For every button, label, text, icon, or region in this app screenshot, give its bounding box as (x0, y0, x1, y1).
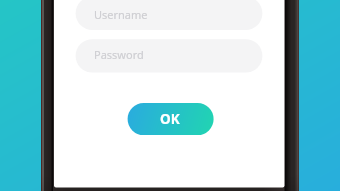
staticText: Password (94, 47, 144, 62)
button[interactable]: OK (128, 103, 214, 135)
button[interactable]: Username input field (76, 0, 263, 30)
staticText: OK (160, 110, 180, 128)
staticText: Username (94, 7, 148, 22)
button[interactable]: Password input field (76, 39, 263, 72)
